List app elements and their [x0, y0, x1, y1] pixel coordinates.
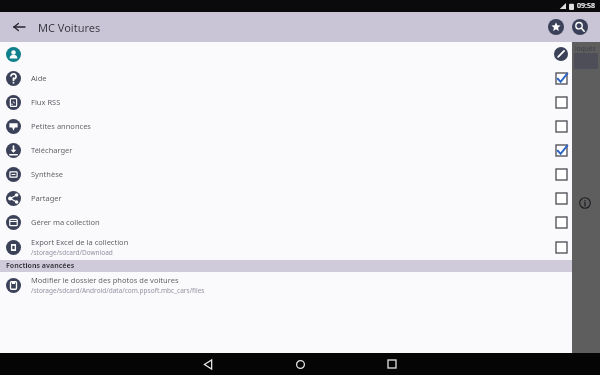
button[interactable]: Modifier le dossier des photos de voitur…	[0, 272, 600, 298]
button[interactable]: Toggle Petites annonces	[552, 117, 570, 135]
staticText: /storage/sdcard/Download	[31, 248, 113, 257]
staticText: Synthèse	[31, 169, 63, 179]
button[interactable]: Toggle Synthèse	[552, 165, 570, 183]
button[interactable]: Info	[578, 196, 592, 210]
button[interactable]: Edit	[0, 42, 600, 66]
button[interactable]: Favorites	[544, 15, 568, 39]
staticText: Export Excel de la collection	[31, 237, 129, 247]
button[interactable]: Aide	[0, 66, 600, 90]
staticText: Flux RSS	[31, 97, 61, 107]
button[interactable]: Synthèse	[0, 162, 600, 186]
button[interactable]: Flux RSS	[0, 90, 600, 114]
button[interactable]: Télécharger	[0, 138, 600, 162]
button[interactable]: Toggle Partager	[552, 189, 570, 207]
staticText: Aide	[31, 73, 47, 83]
staticText: Partager	[31, 193, 62, 203]
staticText: Fonctions avancées	[6, 261, 75, 271]
button[interactable]: Toggle Export Excel de la collection	[552, 238, 570, 256]
button[interactable]: Recents	[370, 353, 414, 375]
button[interactable]: Toggle Aide	[552, 69, 570, 87]
button[interactable]: Gérer ma collection	[0, 210, 600, 234]
staticText: Modifier le dossier des photos de voitur…	[31, 275, 179, 285]
staticText: Gérer ma collection	[31, 217, 100, 227]
button[interactable]: Toggle Gérer ma collection	[552, 213, 570, 231]
button[interactable]: Petites annonces	[0, 114, 600, 138]
staticText: /storage/sdcard/Android/data/com.ppsoft.…	[31, 286, 205, 295]
button[interactable]: Toggle Télécharger	[552, 141, 570, 159]
staticText: MC Voitures	[38, 20, 101, 35]
button[interactable]: Edit	[552, 45, 570, 63]
button[interactable]: Back	[186, 353, 230, 375]
button[interactable]: Export Excel de la collection	[0, 234, 600, 260]
button[interactable]: Toggle Flux RSS	[552, 93, 570, 111]
button[interactable]: Search	[568, 15, 592, 39]
button[interactable]: Back	[8, 16, 30, 38]
button[interactable]: Partager	[0, 186, 600, 210]
staticText: 09:58	[577, 1, 595, 11]
staticText: loqués	[575, 44, 596, 53]
staticText: Télécharger	[31, 145, 73, 155]
button[interactable]: Home	[278, 353, 322, 375]
staticText: Petites annonces	[31, 121, 91, 131]
